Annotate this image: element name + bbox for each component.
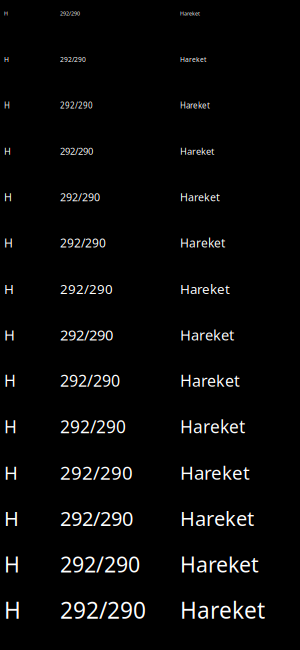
staticText: 292/290 xyxy=(60,595,146,625)
staticText: H xyxy=(4,190,12,204)
staticText: H xyxy=(4,550,20,578)
staticText: H xyxy=(4,10,8,17)
staticText: 292/290 xyxy=(60,235,106,251)
staticText: 292/290 xyxy=(60,370,120,391)
staticText: 292/290 xyxy=(60,460,133,485)
staticText: Hareket xyxy=(180,280,230,298)
staticText: 292/290 xyxy=(60,145,93,157)
staticText: 292/290 xyxy=(60,280,113,298)
staticText: 292/290 xyxy=(60,325,113,344)
staticText: Hareket xyxy=(180,10,200,17)
staticText: H xyxy=(4,145,11,157)
staticText: Hareket xyxy=(180,325,234,344)
staticText: H xyxy=(4,370,16,391)
staticText: 292/290 xyxy=(60,505,133,532)
staticText: Hareket xyxy=(180,145,214,157)
staticText: Hareket xyxy=(180,100,210,111)
staticText: H xyxy=(4,595,21,625)
staticText: H xyxy=(4,505,19,532)
staticText: H xyxy=(4,460,18,485)
staticText: 292/290 xyxy=(60,100,93,111)
staticText: 292/290 xyxy=(60,10,80,17)
staticText: 292/290 xyxy=(60,550,140,578)
staticText: H xyxy=(4,100,10,111)
staticText: H xyxy=(4,55,9,64)
staticText: Hareket xyxy=(180,55,206,64)
staticText: Hareket xyxy=(180,460,250,485)
staticText: Hareket xyxy=(180,370,240,391)
staticText: H xyxy=(4,325,15,344)
staticText: Hareket xyxy=(180,595,265,625)
staticText: H xyxy=(4,235,13,251)
staticText: 292/290 xyxy=(60,415,126,438)
staticText: Hareket xyxy=(180,550,259,578)
staticText: Hareket xyxy=(180,190,220,204)
staticText: Hareket xyxy=(180,505,254,532)
staticText: H xyxy=(4,415,17,438)
staticText: 292/290 xyxy=(60,55,86,64)
staticText: H xyxy=(4,280,14,298)
staticText: 292/290 xyxy=(60,190,100,204)
staticText: Hareket xyxy=(180,235,225,251)
staticText: Hareket xyxy=(180,415,245,438)
